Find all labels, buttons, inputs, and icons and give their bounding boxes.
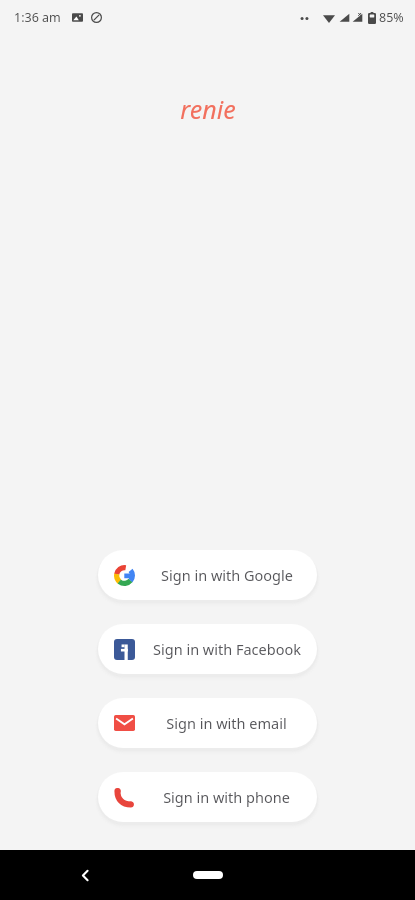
button[interactable]: Sign in with phone — [98, 772, 317, 822]
button[interactable]: Sign in with Google — [98, 550, 317, 600]
staticText: Sign in with Google — [161, 565, 293, 585]
staticText: 85% — [379, 9, 404, 26]
button[interactable]: Sign in with Facebook — [98, 624, 317, 674]
staticText: 1:36 am — [14, 9, 61, 26]
button[interactable]: Home — [178, 858, 238, 892]
button[interactable]: Back — [64, 854, 106, 896]
staticText: Sign in with phone — [163, 787, 290, 807]
staticText: Sign in with Facebook — [153, 639, 301, 659]
staticText: Sign in with email — [166, 713, 287, 733]
button[interactable]: Sign in with email — [98, 698, 317, 748]
staticText: renie — [180, 92, 236, 126]
